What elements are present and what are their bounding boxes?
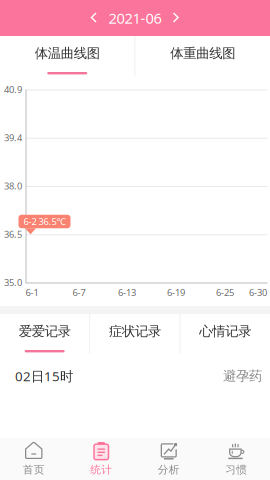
button[interactable]: 体重曲线图 bbox=[135, 36, 270, 76]
button[interactable]: Previous month bbox=[83, 5, 105, 31]
button[interactable]: 统计 bbox=[67, 438, 135, 480]
staticText: 症状记录 bbox=[109, 323, 161, 339]
button[interactable]: Next month bbox=[165, 5, 187, 31]
button[interactable]: 爱爱记录 bbox=[0, 314, 89, 354]
button[interactable]: 习惯 bbox=[202, 438, 270, 480]
staticText: 心情记录 bbox=[199, 323, 251, 339]
staticText: 6-7 bbox=[72, 286, 85, 299]
staticText: 习惯 bbox=[225, 463, 247, 476]
staticText: 6-19 bbox=[167, 286, 185, 299]
staticText: 体重曲线图 bbox=[170, 45, 235, 61]
staticText: 2021-06 bbox=[108, 8, 161, 28]
staticText: 爱爱记录 bbox=[19, 323, 71, 339]
staticText: 6-13 bbox=[118, 286, 136, 299]
staticText: 6-1 bbox=[25, 286, 38, 299]
button[interactable]: 体温曲线图 bbox=[0, 36, 134, 76]
staticText: 避孕药 bbox=[223, 368, 262, 384]
button[interactable]: 心情记录 bbox=[181, 314, 270, 354]
staticText: 38.0 bbox=[4, 180, 22, 192]
staticText: 36.5 bbox=[4, 228, 22, 240]
staticText: 6-2 36.5℃ bbox=[23, 215, 65, 228]
staticText: 39.4 bbox=[4, 132, 22, 144]
button[interactable]: 分析 bbox=[135, 438, 202, 480]
staticText: 02日15时 bbox=[15, 367, 73, 385]
staticText: 首页 bbox=[23, 463, 45, 476]
staticText: 35.0 bbox=[4, 276, 22, 289]
staticText: 40.9 bbox=[4, 83, 22, 96]
staticText: 6-25 bbox=[216, 286, 234, 299]
staticText: 分析 bbox=[158, 463, 180, 476]
staticText: 统计 bbox=[90, 463, 112, 476]
staticText: 6-30 bbox=[249, 286, 267, 299]
button[interactable]: 症状记录 bbox=[90, 314, 180, 354]
button[interactable]: 02日15时 bbox=[0, 354, 270, 398]
staticText: 体温曲线图 bbox=[35, 45, 100, 61]
button[interactable]: 首页 bbox=[0, 438, 67, 480]
